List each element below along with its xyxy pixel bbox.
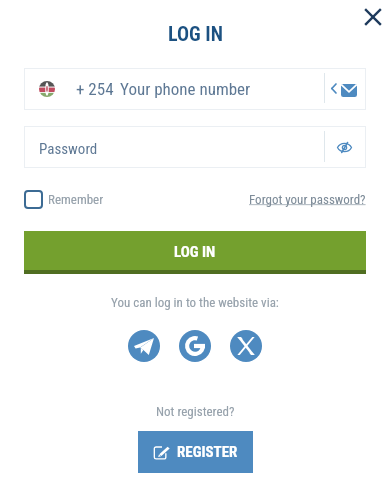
button[interactable]: X bbox=[230, 330, 262, 362]
button[interactable]: Show password bbox=[333, 136, 355, 158]
button[interactable]: LOG IN bbox=[24, 231, 366, 274]
staticText: LOG IN bbox=[168, 22, 223, 45]
staticText: Remember bbox=[48, 192, 104, 207]
staticText: Forgot your password? bbox=[249, 192, 366, 207]
button[interactable]: Choose login method bbox=[326, 77, 340, 100]
button[interactable]: Email bbox=[340, 82, 357, 99]
button[interactable]: Close bbox=[359, 3, 387, 31]
staticText: You can log in to the website via: bbox=[111, 295, 279, 310]
button[interactable]: Google bbox=[179, 330, 211, 362]
staticText: Your phone number bbox=[120, 79, 251, 99]
staticText: + 254 bbox=[76, 79, 114, 99]
staticText: Not registered? bbox=[156, 404, 235, 419]
staticText: REGISTER bbox=[177, 443, 238, 461]
button[interactable]: REGISTER bbox=[138, 431, 253, 473]
button[interactable]: Telegram bbox=[128, 330, 160, 362]
staticText: Password bbox=[39, 140, 98, 158]
button[interactable]: Forgot your password? bbox=[249, 192, 366, 207]
staticText: LOG IN bbox=[174, 243, 216, 261]
button[interactable]: Remember bbox=[24, 190, 104, 209]
